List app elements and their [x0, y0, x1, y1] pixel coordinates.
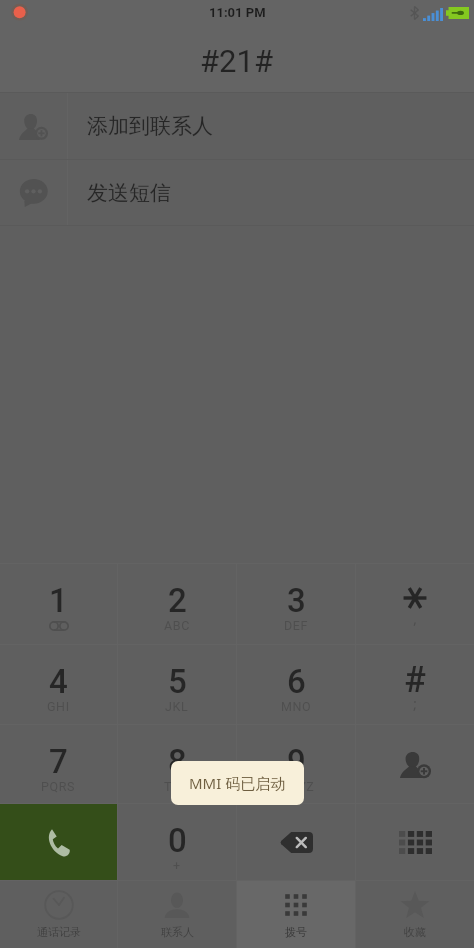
staticText: TUV	[164, 779, 190, 794]
button[interactable]: Add contact	[356, 725, 474, 803]
button[interactable]: 4	[0, 645, 117, 724]
staticText: 1	[49, 581, 68, 620]
button[interactable]: 添加到联系人	[0, 93, 474, 159]
staticText: 通话记录	[37, 925, 81, 939]
staticText: ABC	[164, 618, 190, 633]
staticText: 联系人	[161, 925, 194, 939]
button[interactable]: 3	[237, 564, 355, 644]
staticText: 拨号	[285, 925, 307, 939]
button[interactable]: 拨号	[237, 881, 355, 948]
staticText: 8	[168, 742, 187, 781]
button[interactable]: Call	[0, 804, 117, 880]
staticText: 7	[49, 742, 68, 781]
staticText: 9	[287, 742, 306, 781]
staticText: 添加到联系人	[87, 113, 213, 139]
staticText: #	[404, 659, 426, 701]
button[interactable]: 8	[118, 725, 236, 803]
staticText: 2	[168, 581, 187, 620]
staticText: #21#	[200, 43, 274, 79]
staticText: 3	[287, 581, 306, 620]
button[interactable]: Backspace	[237, 804, 355, 880]
button[interactable]: 7	[0, 725, 117, 803]
staticText: 4	[49, 662, 68, 701]
button[interactable]: 2	[118, 564, 236, 644]
button[interactable]: 0	[118, 804, 236, 880]
button[interactable]: 9	[237, 725, 355, 803]
button[interactable]: Dialpad	[356, 804, 474, 880]
button[interactable]: 1	[0, 564, 117, 644]
staticText: PQRS	[41, 779, 76, 794]
staticText: WXYZ	[278, 779, 315, 794]
staticText: MNO	[281, 699, 312, 714]
staticText: 5	[168, 662, 187, 701]
button[interactable]: 6	[237, 645, 355, 724]
staticText: 0	[168, 821, 187, 860]
staticText: +	[173, 858, 181, 873]
button[interactable]: ,	[356, 564, 474, 644]
staticText: 收藏	[404, 925, 426, 939]
staticText: 11:01 PM	[209, 5, 266, 20]
staticText: MMI 码已启动	[189, 773, 286, 793]
staticText: 发送短信	[87, 180, 171, 206]
staticText: GHI	[47, 699, 70, 714]
staticText: 6	[287, 662, 306, 701]
staticText: DEF	[284, 618, 309, 633]
staticText: JKL	[165, 699, 189, 714]
button[interactable]: 5	[118, 645, 236, 724]
button[interactable]: 发送短信	[0, 160, 474, 225]
staticText: ;	[413, 693, 418, 713]
button[interactable]: #	[356, 645, 474, 724]
